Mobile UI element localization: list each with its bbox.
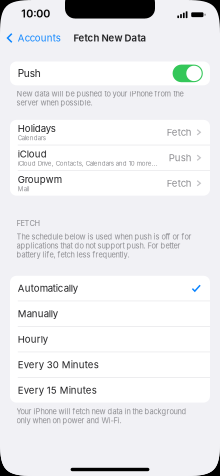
staticText: Mail [18, 185, 29, 193]
staticText: Calendars [18, 134, 46, 142]
staticText: Hourly [18, 333, 48, 345]
staticText: Fetch [167, 177, 192, 189]
staticText: Accounts [18, 32, 61, 44]
staticText: Push [18, 67, 41, 79]
button[interactable]: Automatically [10, 276, 210, 301]
staticText: iCloud Drive, Contacts, Calendars and 10… [18, 160, 158, 167]
button[interactable]: Every 30 Minutes [10, 352, 210, 377]
staticText: server when possible. [16, 98, 92, 107]
staticText: 10:00 [21, 7, 50, 20]
staticText: Every 15 Minutes [18, 384, 97, 396]
staticText: Push [169, 152, 192, 164]
staticText: New data will be pushed to your iPhone f… [16, 89, 183, 98]
button[interactable]: Accounts [0, 29, 61, 47]
staticText: Automatically [18, 282, 78, 294]
staticText: Your iPhone will fetch new data in the b… [16, 407, 186, 416]
staticText: only when on power and Wi-Fi. [16, 416, 121, 425]
button[interactable]: iCloud [10, 145, 210, 170]
staticText: FETCH [16, 219, 40, 228]
button[interactable]: Groupwm [10, 171, 210, 196]
staticText: The schedule below is used when push is … [16, 232, 191, 241]
button[interactable]: Holidays [10, 120, 210, 145]
staticText: iCloud [18, 148, 47, 160]
staticText: Groupwm [18, 174, 62, 185]
button[interactable]: Hourly [10, 327, 210, 352]
staticText: Fetch [167, 126, 192, 138]
staticText: Fetch New Data [73, 32, 146, 44]
staticText: Manually [18, 308, 58, 319]
staticText: Every 30 Minutes [18, 359, 99, 370]
button[interactable]: Manually [10, 301, 210, 326]
staticText: Holidays [18, 123, 56, 134]
staticText: applications that do not support push. F… [16, 241, 180, 250]
staticText: battery life, fetch less frequently. [16, 250, 129, 259]
button[interactable]: Every 15 Minutes [10, 378, 210, 403]
button[interactable]: Push [173, 65, 203, 82]
